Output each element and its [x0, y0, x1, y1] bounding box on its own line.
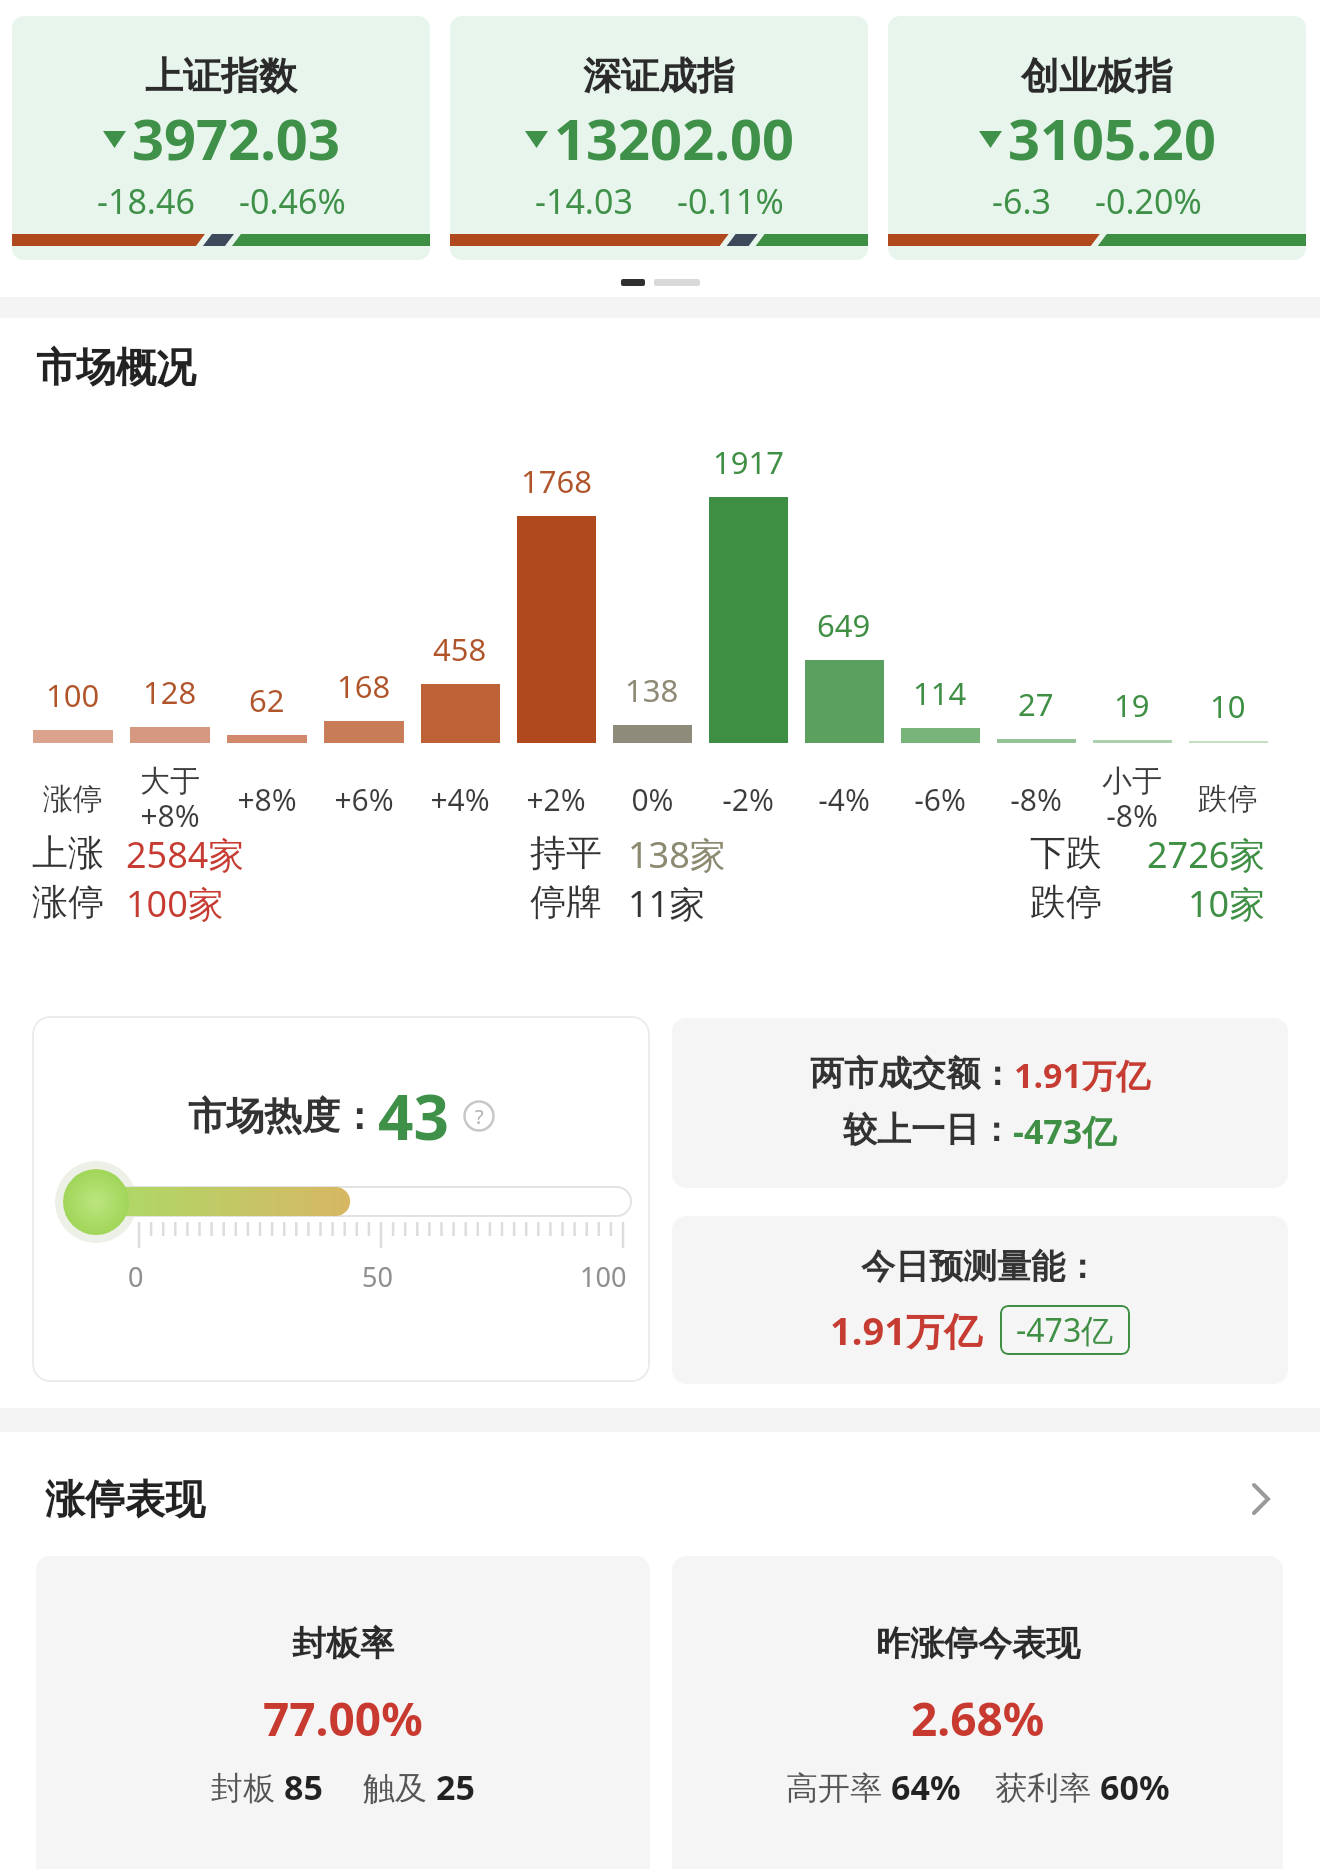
staticText: 2726家	[1147, 830, 1266, 874]
staticText: 下跌	[1030, 830, 1102, 874]
staticText: 跌停	[1030, 879, 1102, 923]
staticText: 3105.20	[1008, 100, 1216, 176]
staticText: 10家	[1188, 879, 1266, 923]
button[interactable]: 上证指数	[12, 16, 430, 260]
staticText: 60%	[1100, 1764, 1170, 1810]
staticText: 持平	[530, 830, 602, 874]
staticText: 小于 -8%	[1102, 762, 1162, 836]
staticText: 100家	[126, 879, 224, 923]
staticText: -0.20%	[1095, 178, 1202, 224]
staticText: 两市成交额：	[810, 1052, 1014, 1095]
button[interactable]: 封板率	[36, 1556, 650, 1869]
staticText: 128	[143, 671, 197, 713]
staticText: 10	[1210, 685, 1246, 727]
button[interactable]: 涨停表现	[0, 1454, 1320, 1544]
staticText: 市场概况	[36, 342, 196, 392]
staticText: 43	[378, 1074, 449, 1158]
staticText: 1768	[521, 460, 592, 502]
staticText: 19	[1114, 684, 1150, 726]
staticText: 649	[817, 604, 871, 646]
staticText: +6%	[334, 779, 394, 820]
staticText: 深证成指	[583, 52, 735, 100]
staticText: 100	[46, 674, 100, 716]
staticText: 2.68%	[911, 1687, 1045, 1750]
button[interactable]: 昨涨停今表现	[672, 1556, 1283, 1869]
staticText: 1917	[713, 441, 784, 483]
staticText: 1.91万亿	[1014, 1052, 1150, 1098]
staticText: 涨停	[32, 879, 104, 923]
staticText: 高开率	[786, 1765, 891, 1809]
button[interactable]: 深证成指	[450, 16, 868, 260]
staticText: 跌停	[1198, 780, 1258, 818]
staticText: 50	[362, 1258, 393, 1295]
staticText: +4%	[430, 779, 490, 820]
staticText: +2%	[526, 779, 586, 820]
staticText: +8%	[237, 779, 297, 820]
staticText: 25	[436, 1764, 475, 1810]
staticText: 138家	[628, 830, 726, 874]
staticText: 168	[337, 665, 391, 707]
button[interactable]: 市场热度：	[32, 1016, 650, 1382]
staticText: 11家	[628, 879, 706, 923]
staticText: -6%	[914, 779, 966, 820]
staticText: 3972.03	[132, 100, 340, 176]
button[interactable]: 创业板指	[888, 16, 1306, 260]
staticText: -18.46	[97, 178, 195, 224]
staticText: 封板率	[292, 1622, 394, 1665]
staticText: 0	[128, 1258, 144, 1295]
staticText: 114	[913, 672, 967, 714]
staticText: -14.03	[535, 178, 633, 224]
button[interactable]: 两市成交额：	[672, 1018, 1288, 1188]
staticText: 涨停	[43, 780, 103, 818]
staticText: 138	[625, 669, 679, 711]
staticText: 85	[284, 1764, 323, 1810]
staticText: 触及	[363, 1765, 436, 1809]
staticText: 上证指数	[145, 52, 297, 100]
staticText: -2%	[722, 779, 774, 820]
staticText: 市场热度：	[188, 1092, 378, 1140]
staticText: -473亿	[1016, 1308, 1114, 1352]
staticText: 13202.00	[554, 100, 794, 176]
staticText: 458	[433, 628, 487, 670]
staticText: 较上一日：	[843, 1108, 1013, 1151]
staticText: 涨停表现	[45, 1474, 205, 1524]
staticText: ?	[475, 1103, 484, 1130]
staticText: -0.46%	[239, 178, 346, 224]
staticText: 2584家	[126, 830, 245, 874]
button[interactable]: 今日预测量能：	[672, 1216, 1288, 1384]
staticText: 今日预测量能：	[861, 1245, 1099, 1288]
staticText: 0%	[631, 779, 674, 820]
staticText: 封板	[211, 1765, 284, 1809]
staticText: 27	[1018, 683, 1054, 725]
staticText: 77.00%	[263, 1687, 423, 1750]
staticText: 创业板指	[1021, 52, 1173, 100]
staticText: -473亿	[1013, 1108, 1117, 1154]
staticText: 64%	[891, 1764, 961, 1810]
staticText: -8%	[1010, 779, 1062, 820]
staticText: 昨涨停今表现	[876, 1622, 1080, 1665]
staticText: -0.11%	[677, 178, 784, 224]
staticText: -6.3	[992, 178, 1051, 224]
staticText: 1.91万亿	[830, 1304, 982, 1356]
staticText: 获利率	[995, 1765, 1100, 1809]
staticText: 100	[580, 1258, 627, 1295]
staticText: 上涨	[32, 830, 104, 874]
staticText: -4%	[818, 779, 870, 820]
staticText: 大于 +8%	[140, 762, 200, 836]
staticText: 62	[249, 679, 285, 721]
staticText: 停牌	[530, 879, 602, 923]
